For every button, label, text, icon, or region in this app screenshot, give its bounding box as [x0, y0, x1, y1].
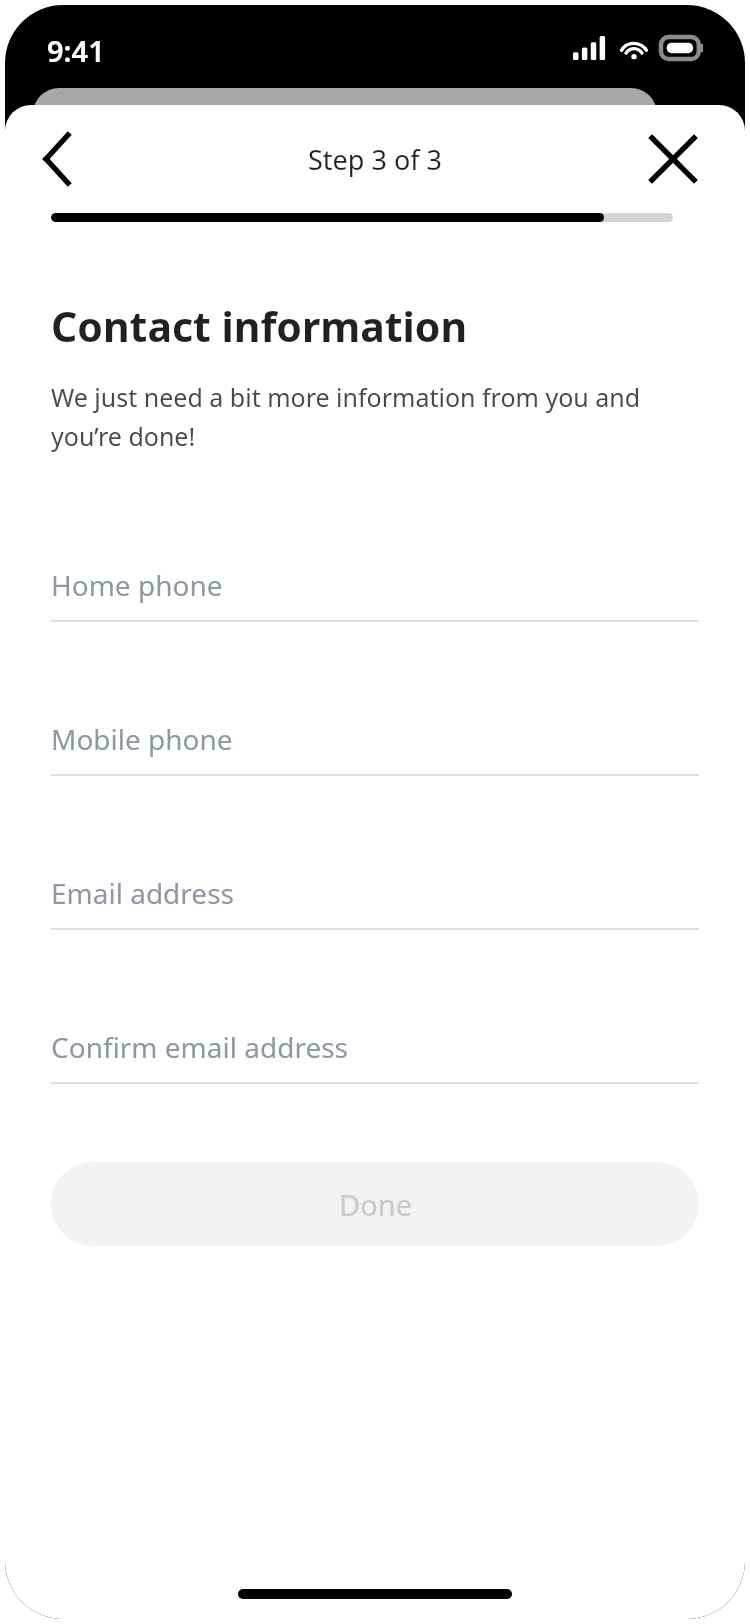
- button[interactable]: Confirm email address: [5, 982, 745, 1136]
- staticText: 9:41: [47, 31, 105, 70]
- staticText: Step 3 of 3: [308, 141, 442, 178]
- staticText: Mobile phone: [51, 720, 233, 758]
- staticText: Home phone: [51, 566, 223, 604]
- button[interactable]: Done: [51, 1162, 699, 1246]
- button[interactable]: Back: [25, 127, 89, 191]
- staticText: Done: [339, 1185, 412, 1224]
- staticText: Contact information: [51, 298, 468, 354]
- staticText: Confirm email address: [51, 1028, 348, 1066]
- button[interactable]: Close: [641, 127, 705, 191]
- button[interactable]: Mobile phone: [5, 674, 745, 828]
- staticText: Email address: [51, 874, 234, 912]
- button[interactable]: Home phone: [5, 520, 745, 674]
- button[interactable]: Email address: [5, 828, 745, 982]
- staticText: We just need a bit more information from…: [51, 380, 685, 454]
